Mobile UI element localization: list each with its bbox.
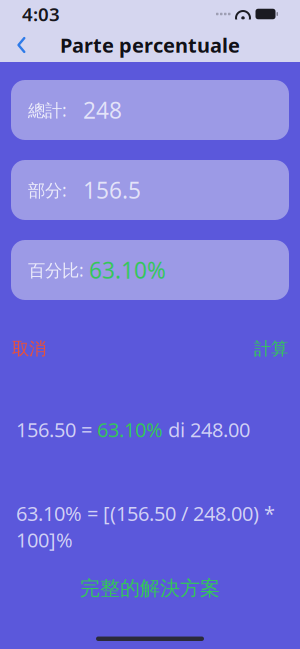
button[interactable]: 百分比: — [11, 240, 289, 300]
staticText: 取消 — [12, 338, 46, 359]
staticText: 63.10% — [89, 255, 166, 285]
staticText: 63.10% — [97, 416, 163, 443]
button[interactable]: 總計: — [11, 80, 289, 140]
staticText: di 248.00 — [163, 416, 250, 443]
staticText: 156.50 = — [16, 416, 97, 443]
button[interactable]: 完整的解決方案 — [60, 570, 240, 606]
button[interactable]: Back — [5, 29, 38, 61]
staticText: 63.10% = [(156.50 / 248.00) * 100]% — [16, 500, 275, 553]
staticText: 部分: — [28, 178, 67, 201]
staticText: 計算 — [254, 338, 288, 359]
button[interactable]: 計算 — [254, 334, 288, 363]
staticText: 248 — [83, 95, 122, 125]
staticText: 總計: — [28, 98, 67, 121]
staticText: 完整的解決方案 — [80, 576, 220, 600]
staticText: 4:03 — [22, 2, 60, 26]
staticText: Parte percentuale — [60, 32, 240, 58]
button[interactable]: 部分: — [11, 160, 289, 220]
staticText: 156.5 — [83, 175, 141, 205]
button[interactable]: 取消 — [12, 334, 46, 363]
staticText: 百分比: — [28, 258, 84, 281]
